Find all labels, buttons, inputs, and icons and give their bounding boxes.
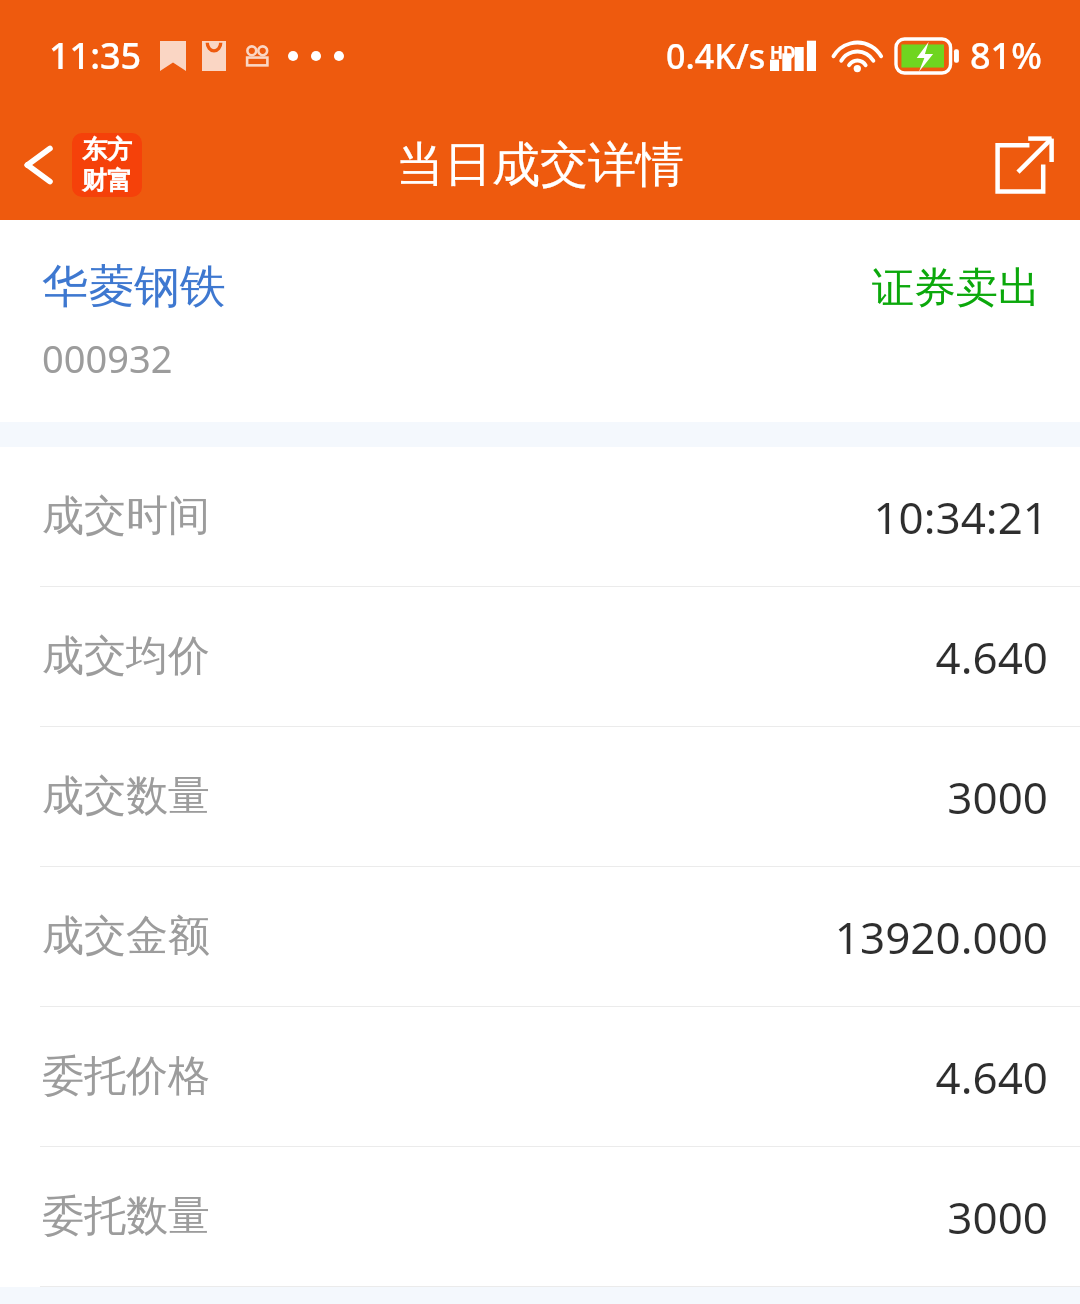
staticText: 成交金额: [42, 910, 210, 963]
staticText: 财富: [82, 165, 132, 196]
staticText: 4.640: [935, 1047, 1048, 1107]
button[interactable]: Back: [0, 123, 154, 207]
staticText: 证券卖出: [872, 262, 1040, 315]
staticText: 10:34:21: [873, 487, 1048, 547]
staticText: 成交数量: [42, 770, 210, 823]
staticText: 成交均价: [42, 630, 210, 683]
staticText: 11:35: [49, 31, 142, 80]
button[interactable]: 成交时间: [0, 447, 1080, 586]
staticText: HD: [770, 41, 796, 64]
staticText: 3000: [947, 1187, 1048, 1247]
staticText: 委托数量: [42, 1190, 210, 1243]
staticText: 委托价格: [42, 1050, 210, 1103]
button[interactable]: 成交数量: [0, 727, 1080, 866]
button[interactable]: 成交均价: [0, 587, 1080, 726]
staticText: 当日成交详情: [396, 135, 684, 195]
button[interactable]: 成交金额: [0, 867, 1080, 1006]
staticText: 东方: [82, 134, 132, 165]
button[interactable]: 华菱钢铁: [0, 220, 1080, 422]
staticText: 4.640: [935, 627, 1048, 687]
staticText: 0.4K/s: [666, 33, 766, 79]
staticText: 13920.000: [834, 907, 1048, 967]
staticText: 81%: [970, 31, 1042, 80]
button[interactable]: Share: [968, 115, 1080, 215]
staticText: 3000: [947, 767, 1048, 827]
button[interactable]: 委托价格: [0, 1007, 1080, 1146]
staticText: 成交时间: [42, 490, 210, 543]
staticText: 华菱钢铁: [42, 258, 226, 316]
staticText: 000932: [42, 332, 173, 384]
button[interactable]: 委托数量: [0, 1147, 1080, 1286]
